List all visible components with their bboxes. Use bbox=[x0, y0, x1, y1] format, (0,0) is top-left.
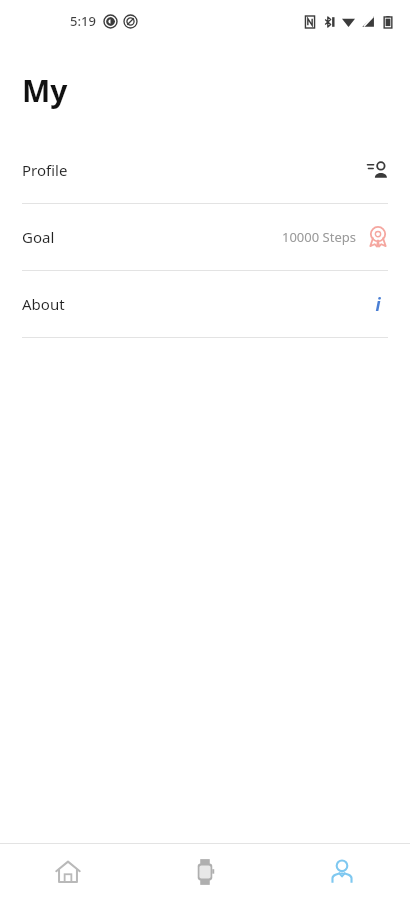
button[interactable]: My bbox=[273, 844, 410, 900]
other: Goal bbox=[366, 225, 390, 249]
button[interactable]: Watch bbox=[136, 844, 273, 900]
button[interactable]: Goal bbox=[0, 204, 410, 270]
other: Profile bbox=[366, 158, 390, 182]
staticText: i bbox=[375, 293, 381, 316]
button[interactable]: Profile bbox=[0, 137, 410, 203]
staticText: 5:19 bbox=[70, 12, 96, 30]
button[interactable]: Home bbox=[0, 844, 136, 900]
button[interactable]: About bbox=[0, 271, 410, 337]
staticText: 10000 Steps bbox=[282, 228, 356, 246]
staticText: Profile bbox=[22, 160, 68, 180]
staticText: My bbox=[22, 70, 68, 111]
staticText: About bbox=[22, 294, 65, 314]
staticText: Goal bbox=[22, 227, 55, 247]
